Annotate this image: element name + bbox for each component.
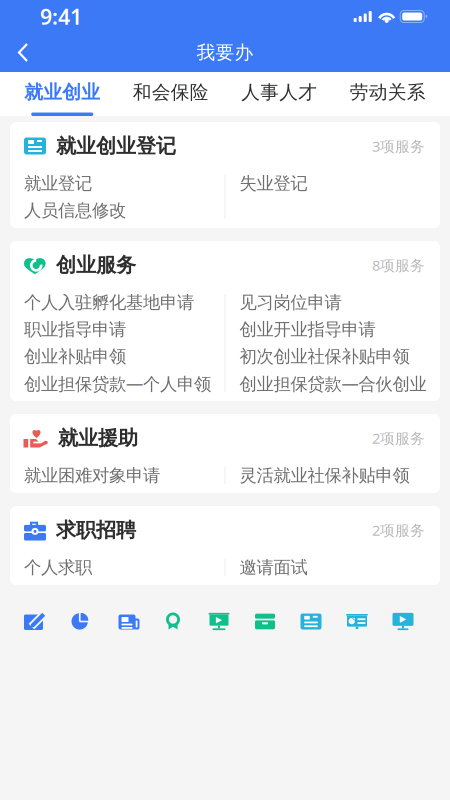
button[interactable]: 就业困难对象申请 [10, 462, 224, 489]
staticText: 就业创业 [24, 81, 100, 104]
staticText: 个人求职 [24, 557, 92, 578]
button[interactable]: 返回 [0, 33, 46, 72]
button[interactable]: 就业登记 [10, 170, 224, 197]
button[interactable]: 个人入驻孵化基地申请 [10, 289, 224, 316]
button[interactable]: 数据统计 [58, 602, 104, 641]
button[interactable]: 人事人才 [225, 72, 333, 116]
button[interactable]: 信息列表 [288, 602, 334, 641]
button[interactable]: 创业补贴申领 [10, 343, 224, 370]
staticText: 灵活就业社保补贴申领 [239, 465, 409, 486]
button[interactable]: 课程 [334, 602, 380, 641]
staticText: 就业创业登记 [56, 134, 176, 158]
staticText: 创业补贴申领 [24, 346, 126, 367]
staticText: 8项服务 [372, 255, 425, 275]
staticText: 我要办 [196, 41, 253, 64]
button[interactable]: 社保卡 [242, 602, 288, 641]
button[interactable]: 和会保险 [116, 72, 225, 116]
staticText: 创业担保贷款—个人申领 [24, 372, 211, 395]
button[interactable]: 荣誉认证 [150, 602, 196, 641]
button[interactable]: 创业担保贷款—个人申领 [10, 370, 224, 397]
staticText: 3项服务 [372, 136, 425, 156]
staticText: 人事人才 [241, 81, 317, 104]
button[interactable]: 职业指导申请 [10, 316, 224, 343]
button[interactable]: 创业开业指导申请 [225, 316, 440, 343]
button[interactable]: 初次创业社保补贴申领 [225, 343, 440, 370]
staticText: 个人入驻孵化基地申请 [24, 292, 194, 313]
staticText: 9:41 [40, 2, 82, 31]
staticText: 创业担保贷款—合伙创业 [239, 372, 426, 395]
button[interactable]: 视频 [380, 602, 426, 641]
button[interactable]: 就业创业 [8, 72, 116, 116]
staticText: 初次创业社保补贴申领 [239, 346, 409, 367]
staticText: 就业登记 [24, 173, 92, 194]
staticText: 2项服务 [372, 428, 425, 448]
staticText: 劳动关系 [350, 81, 426, 104]
button[interactable]: 邀请面试 [225, 554, 440, 581]
staticText: 邀请面试 [239, 557, 307, 578]
staticText: 人员信息修改 [24, 200, 126, 221]
button[interactable]: 创业担保贷款—合伙创业 [225, 370, 440, 397]
button[interactable]: 视频宣讲 [196, 602, 242, 641]
staticText: 求职招聘 [56, 518, 136, 542]
staticText: 职业指导申请 [24, 319, 126, 340]
staticText: 见习岗位申请 [239, 292, 341, 313]
staticText: 和会保险 [133, 81, 209, 104]
button[interactable]: 人员信息修改 [10, 197, 224, 224]
button[interactable]: 个人求职 [10, 554, 224, 581]
staticText: 创业开业指导申请 [239, 319, 375, 340]
staticText: 创业服务 [56, 253, 136, 277]
button[interactable]: 见习岗位申请 [225, 289, 440, 316]
button[interactable]: 失业登记 [225, 170, 440, 197]
button[interactable]: 劳动关系 [333, 72, 442, 116]
staticText: 2项服务 [372, 520, 425, 540]
button[interactable]: 业务办理 [12, 602, 58, 641]
staticText: 就业援助 [58, 426, 138, 450]
button[interactable]: 灵活就业社保补贴申领 [225, 462, 440, 489]
button[interactable]: 新闻资讯 [104, 602, 150, 641]
staticText: 就业困难对象申请 [24, 465, 160, 486]
staticText: 失业登记 [239, 173, 307, 194]
